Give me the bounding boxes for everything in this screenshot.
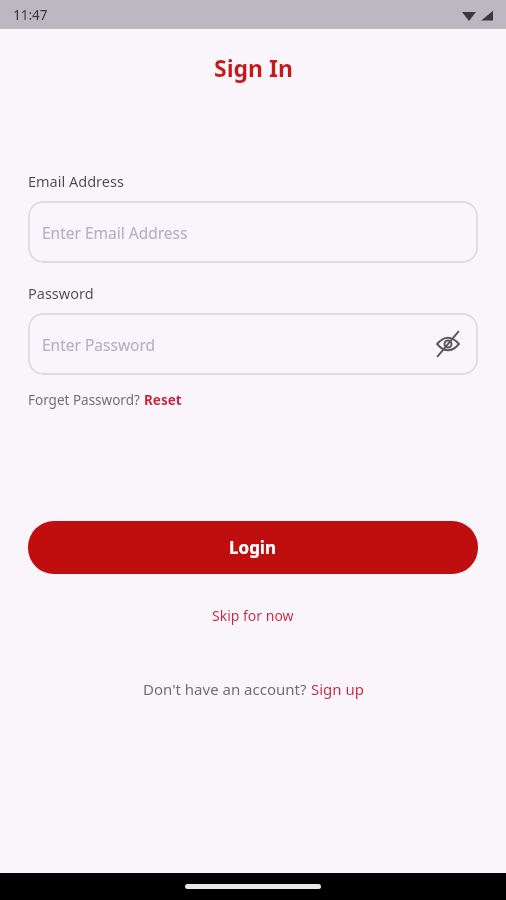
staticText: Skip for now bbox=[212, 606, 294, 625]
button[interactable]: Enter Email Address bbox=[28, 201, 478, 263]
button[interactable]: Show password bbox=[430, 326, 466, 362]
staticText: Enter Password bbox=[42, 334, 156, 355]
button[interactable]: Sign up bbox=[311, 679, 364, 699]
staticText: Email Address bbox=[28, 171, 124, 191]
staticText: Password bbox=[28, 283, 94, 303]
staticText: Login bbox=[229, 536, 277, 559]
staticText: Sign In bbox=[214, 52, 293, 83]
button[interactable]: Login bbox=[28, 521, 478, 574]
staticText: 11:47 bbox=[13, 6, 48, 24]
button[interactable]: Reset bbox=[144, 391, 182, 409]
other: Home bbox=[185, 884, 321, 889]
staticText: Enter Email Address bbox=[42, 222, 188, 243]
staticText: Sign up bbox=[311, 679, 364, 699]
staticText: Forget Password? bbox=[28, 391, 144, 409]
button[interactable]: Enter Password bbox=[28, 313, 478, 375]
button[interactable]: Skip for now bbox=[200, 602, 306, 629]
staticText: Don't have an account? bbox=[143, 679, 311, 699]
staticText: Reset bbox=[144, 391, 182, 409]
